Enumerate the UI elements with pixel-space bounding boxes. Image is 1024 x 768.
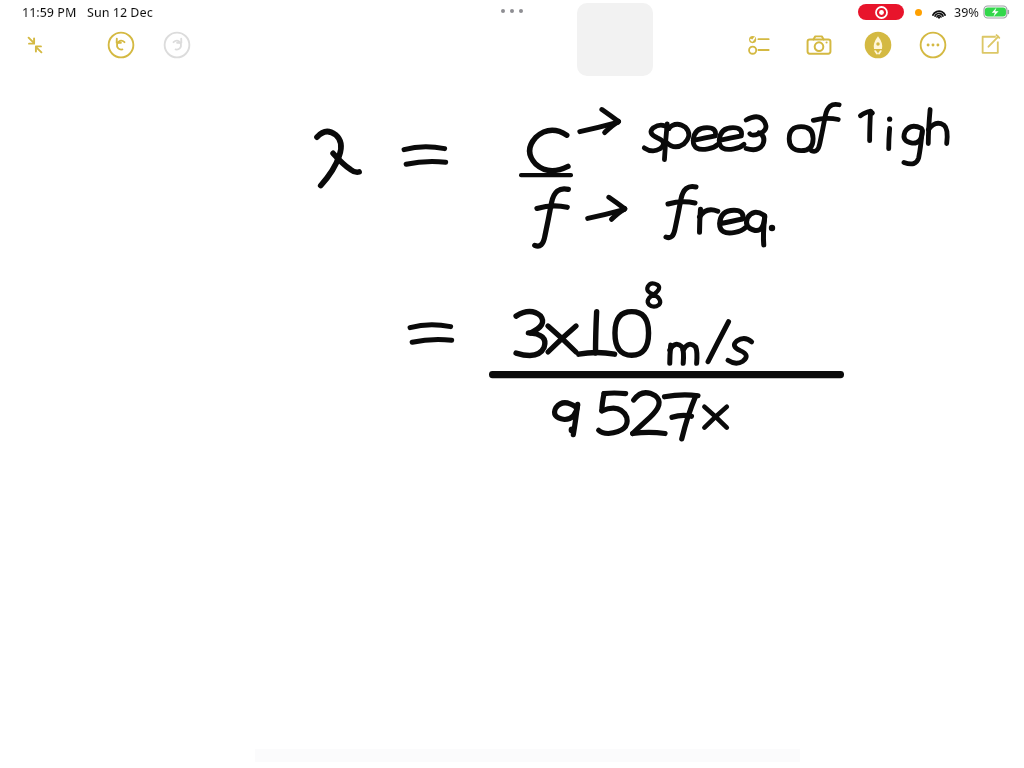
button[interactable]: Checklist	[738, 23, 782, 67]
button[interactable]: Handwritten note	[0, 0, 1024, 768]
button[interactable]: Undo	[99, 23, 143, 67]
button[interactable]: AI assist	[856, 23, 900, 67]
button[interactable]: Redo	[155, 23, 199, 67]
button[interactable]: Collapse	[13, 23, 57, 67]
button[interactable]: More options	[911, 23, 955, 67]
staticText: 11:59 PM	[22, 4, 77, 21]
button[interactable]: New note	[968, 23, 1012, 67]
button[interactable]: Camera	[797, 23, 841, 67]
button[interactable]: Screen recording	[858, 4, 904, 20]
staticText: Sun 12 Dec	[87, 4, 153, 21]
staticText: 39%	[954, 4, 979, 21]
